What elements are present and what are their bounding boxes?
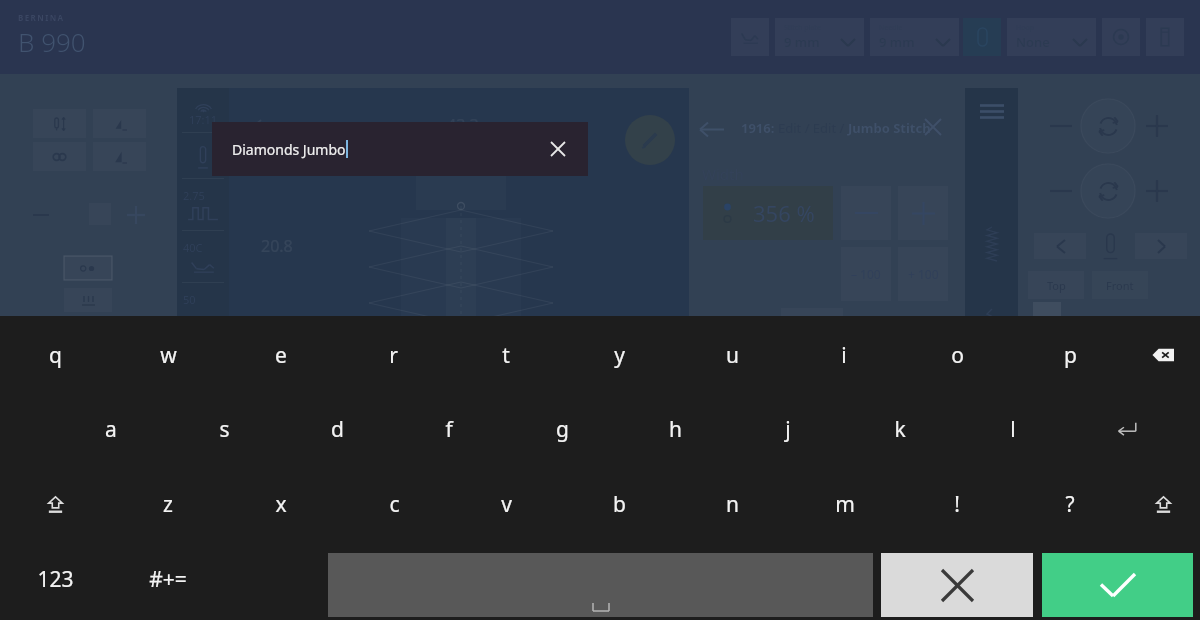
button[interactable]: c [349, 474, 439, 534]
button[interactable]: w [123, 325, 213, 385]
button[interactable]: #+= [123, 549, 213, 609]
staticText: 43.3 [447, 114, 479, 136]
button[interactable]: Shift [10, 474, 100, 534]
button[interactable]: a [66, 399, 156, 459]
staticText: q [49, 341, 62, 370]
staticText: 20.8 [261, 235, 293, 257]
button[interactable]: e [236, 325, 326, 385]
button[interactable]: Confirm [1042, 553, 1193, 617]
button[interactable]: u [687, 325, 777, 385]
staticText: k [894, 415, 906, 444]
button[interactable]: s [179, 399, 269, 459]
staticText: x [275, 490, 287, 519]
button[interactable]: Backspace [1118, 325, 1200, 385]
button[interactable]: Shift [1118, 474, 1200, 534]
staticText: 40C [183, 240, 203, 255]
button[interactable]: Cancel [881, 553, 1033, 617]
button[interactable]: d [292, 399, 382, 459]
button[interactable]: x [236, 474, 326, 534]
button[interactable]: g [517, 399, 607, 459]
button[interactable]: v [461, 474, 551, 534]
button[interactable]: p [1025, 325, 1115, 385]
button[interactable]: Increase [123, 202, 149, 228]
button[interactable]: q [10, 325, 100, 385]
button[interactable]: l [968, 399, 1058, 459]
button[interactable]: h [630, 399, 720, 459]
button[interactable]: Close [918, 112, 948, 142]
button[interactable]: 356 % [703, 186, 833, 240]
staticText: e [275, 341, 287, 370]
button[interactable]: ! [912, 474, 1002, 534]
staticText: 17:11 [189, 112, 218, 127]
button[interactable]: k [855, 399, 945, 459]
button[interactable]: n [687, 474, 777, 534]
button[interactable]: Option 1 [64, 256, 112, 280]
staticText: Diamonds Jumbo [232, 140, 346, 159]
button[interactable]: Clear [544, 135, 572, 163]
button[interactable]: b [574, 474, 664, 534]
button[interactable]: j [743, 399, 833, 459]
staticText: BERNINA [18, 12, 65, 23]
staticText: o [951, 341, 964, 370]
staticText: s [219, 415, 230, 444]
button[interactable]: Menu [980, 104, 1004, 119]
staticText: v [501, 490, 512, 519]
button[interactable]: m [800, 474, 890, 534]
button[interactable]: y [574, 325, 664, 385]
staticText: f [445, 415, 453, 444]
staticText: j [785, 415, 791, 444]
button[interactable]: r [348, 325, 438, 385]
button[interactable]: t [461, 325, 551, 385]
button[interactable]: Back [697, 114, 727, 144]
button[interactable]: 123 [10, 549, 100, 609]
button[interactable]: o [912, 325, 1002, 385]
staticText: 2.75 [183, 188, 205, 203]
button[interactable]: ? [1025, 474, 1115, 534]
staticText: u [726, 341, 739, 370]
staticText: d [331, 415, 344, 444]
button[interactable]: Edit [625, 115, 675, 165]
staticText: ? [1065, 490, 1075, 519]
button[interactable]: f [404, 399, 494, 459]
button[interactable]: z [123, 474, 213, 534]
staticText: t [502, 341, 510, 370]
staticText: g [556, 415, 569, 444]
button[interactable]: Enter [1082, 399, 1172, 459]
button[interactable]: i [799, 325, 889, 385]
